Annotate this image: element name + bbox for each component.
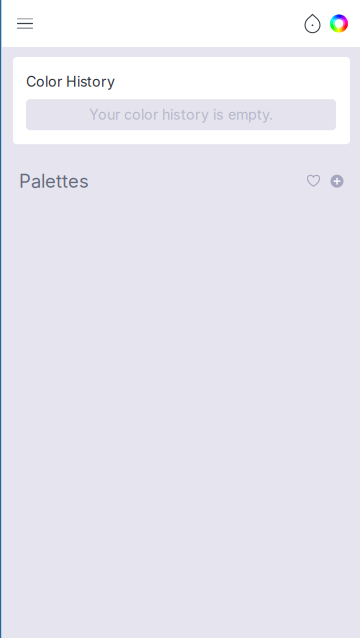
staticText: Palettes <box>19 170 89 192</box>
button[interactable]: Pick a colour <box>299 6 326 40</box>
staticText: Your color history is empty. <box>89 106 273 123</box>
button[interactable]: Favourite palettes <box>298 169 325 193</box>
staticText: Color History <box>26 73 115 90</box>
button[interactable]: Colour wheel <box>326 6 352 40</box>
button[interactable]: New palette <box>325 169 349 193</box>
button[interactable]: Menu <box>8 6 42 40</box>
